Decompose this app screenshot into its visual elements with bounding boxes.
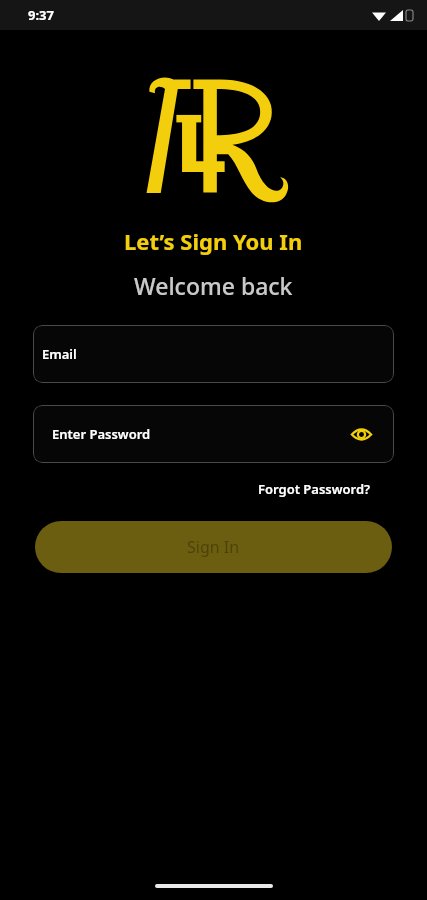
button[interactable]: Forgot Password? <box>258 477 371 501</box>
staticText: Welcome back <box>134 270 293 301</box>
staticText: Sign In <box>187 536 240 558</box>
button[interactable]: Show password <box>348 421 374 447</box>
button[interactable]: Email <box>33 325 394 383</box>
staticText: Forgot Password? <box>258 480 371 498</box>
button[interactable]: Sign In <box>35 521 392 573</box>
staticText: Let’s Sign You In <box>124 226 303 256</box>
button[interactable]: Enter Password <box>33 405 394 463</box>
staticText: 9:37 <box>28 6 54 24</box>
staticText: Enter Password <box>52 425 151 443</box>
staticText: Email <box>42 345 77 363</box>
